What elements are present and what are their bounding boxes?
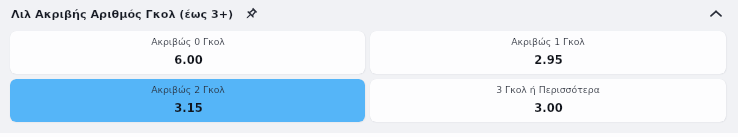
staticText: 3 Γκολ ή Περισσότερα — [496, 84, 600, 95]
staticText: 3.15 — [174, 101, 203, 114]
staticText: 3.00 — [534, 101, 563, 114]
button[interactable]: 3 Γκολ ή Περισσότερα — [370, 79, 726, 122]
button[interactable]: Ακριβώς 1 Γκολ — [370, 31, 726, 74]
staticText: Ακριβώς 0 Γκολ — [151, 36, 225, 47]
button[interactable]: Pin market — [241, 4, 261, 24]
staticText: Λιλ Ακριβής Αριθμός Γκολ (έως 3+) — [11, 8, 234, 21]
staticText: Ακριβώς 1 Γκολ — [511, 36, 585, 47]
button[interactable]: Collapse — [704, 2, 728, 26]
button[interactable]: Λιλ Ακριβής Αριθμός Γκολ (έως 3+) — [0, 0, 738, 28]
staticText: 6.00 — [174, 53, 203, 66]
button[interactable]: Ακριβώς 0 Γκολ — [10, 31, 365, 74]
staticText: Ακριβώς 2 Γκολ — [151, 84, 225, 95]
button[interactable]: Ακριβώς 2 Γκολ — [10, 79, 365, 122]
staticText: 2.95 — [534, 53, 563, 66]
